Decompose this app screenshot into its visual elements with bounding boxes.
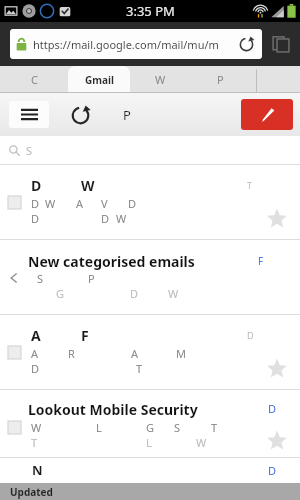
button[interactable]: N	[0, 458, 300, 484]
button[interactable]: Star	[266, 430, 288, 452]
staticText: Updated	[10, 485, 53, 499]
button[interactable]: S	[0, 136, 300, 164]
staticText: M	[176, 346, 186, 361]
button[interactable]: P	[190, 66, 250, 93]
button[interactable]: W	[130, 66, 190, 93]
button[interactable]: Menu	[9, 101, 49, 128]
staticText: 3:35 PM	[126, 2, 175, 20]
staticText: W	[31, 420, 42, 435]
staticText: T	[136, 361, 143, 376]
button[interactable]: Search	[114, 102, 140, 128]
staticText: A	[31, 346, 39, 361]
button[interactable]: New categorised emails	[0, 240, 300, 314]
button[interactable]: Select conversation	[0, 165, 300, 239]
button[interactable]: Tabs: 2	[268, 31, 294, 57]
staticText: G	[146, 420, 155, 435]
staticText: New categorised emails	[28, 252, 195, 271]
staticText: D	[31, 361, 40, 376]
staticText: L	[146, 435, 152, 450]
button[interactable]: Star	[266, 208, 288, 230]
staticText: W	[45, 196, 56, 211]
staticText: P	[217, 72, 224, 87]
button[interactable]: Select conversation	[0, 315, 300, 389]
staticText: N	[32, 461, 43, 479]
staticText: A	[131, 346, 139, 361]
staticText: D	[268, 401, 277, 416]
button[interactable]: Select conversation	[8, 421, 21, 434]
staticText: F	[258, 254, 264, 268]
staticText: S	[26, 143, 33, 158]
button[interactable]: Select conversation	[8, 196, 21, 209]
staticText: D	[130, 286, 139, 301]
button[interactable]: Lookout Mobile Security	[0, 390, 300, 457]
staticText: Gmail	[85, 73, 114, 87]
staticText: D	[31, 211, 40, 226]
button[interactable]: Reload	[236, 34, 256, 54]
staticText: S	[174, 420, 181, 435]
button[interactable]: Select conversation	[8, 346, 21, 359]
staticText: D	[101, 211, 110, 226]
staticText: W	[81, 176, 95, 195]
button[interactable]: C	[0, 66, 68, 93]
button[interactable]: Refresh	[66, 101, 94, 129]
staticText: A	[31, 326, 41, 345]
staticText: L	[96, 420, 102, 435]
staticText: A	[76, 196, 84, 211]
staticText: G	[56, 286, 65, 301]
staticText: F	[81, 326, 89, 345]
button[interactable]: Compose	[241, 99, 293, 130]
staticText: D	[128, 196, 137, 211]
staticText: V	[101, 196, 108, 211]
staticText: R	[68, 346, 75, 361]
staticText: C	[31, 72, 38, 87]
staticText: https://mail.google.com/mail/mu/m	[33, 37, 219, 52]
staticText: D	[268, 463, 277, 478]
staticText: S	[37, 271, 44, 286]
staticText: D	[31, 196, 40, 211]
button[interactable]: Star	[266, 358, 288, 380]
staticText: D	[31, 176, 42, 195]
button[interactable]: https://mail.google.com/mail/mu/m	[10, 29, 262, 59]
staticText: P	[88, 271, 95, 286]
staticText: D	[247, 329, 254, 341]
staticText: T	[211, 420, 218, 435]
staticText: T	[31, 435, 38, 450]
staticText: W	[196, 435, 207, 450]
staticText: W	[168, 286, 179, 301]
button[interactable]: Gmail	[68, 66, 130, 93]
staticText: W	[116, 211, 127, 226]
staticText: P	[123, 106, 131, 124]
staticText: T	[247, 179, 253, 191]
staticText: Lookout Mobile Security	[28, 400, 198, 419]
staticText: W	[155, 72, 166, 87]
